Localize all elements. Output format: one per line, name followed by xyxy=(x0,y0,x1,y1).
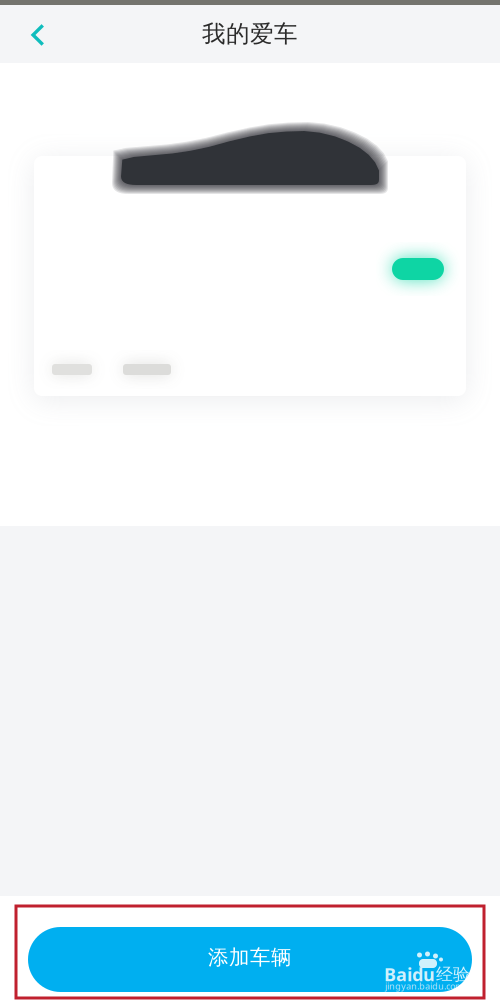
staticText: Baidu xyxy=(384,962,435,986)
staticText: jingyan.baidu.com xyxy=(385,980,463,992)
button[interactable]: Back xyxy=(15,12,61,58)
button[interactable]: 添加车辆 xyxy=(28,927,472,992)
staticText: 添加车辆 xyxy=(208,945,292,970)
staticText: 我的爱车 xyxy=(202,19,298,49)
staticText: 经验 xyxy=(436,964,470,985)
